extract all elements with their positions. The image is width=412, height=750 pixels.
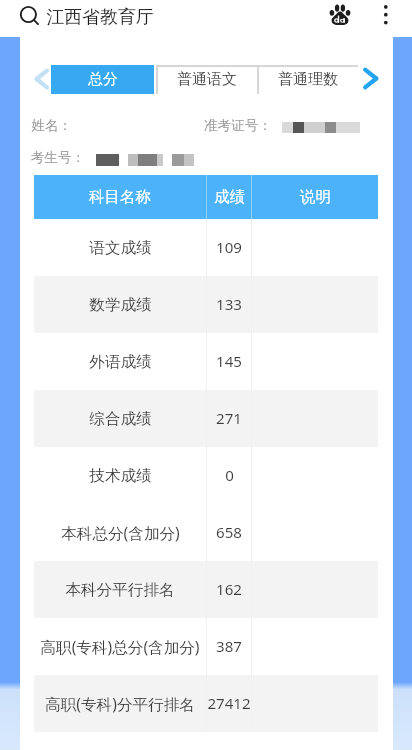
staticText: 数学成绩 — [89, 295, 152, 315]
button[interactable]: Next — [364, 68, 378, 89]
staticText: 本科分平行排名 — [65, 580, 175, 600]
button[interactable]: 语文成绩 — [34, 219, 378, 276]
staticText: 准考证号： — [204, 117, 272, 134]
staticText: 江西省教育厅 — [46, 6, 154, 29]
staticText: 科目名称 — [89, 187, 151, 207]
button[interactable]: 普通理数 — [257, 65, 358, 94]
staticText: 145 — [216, 351, 242, 372]
button[interactable]: Baidu — [329, 3, 355, 29]
staticText: 综合成绩 — [89, 409, 152, 429]
staticText: 成绩 — [214, 187, 245, 207]
staticText: 普通语文 — [177, 70, 237, 89]
staticText: 技术成绩 — [89, 466, 152, 486]
staticText: 语文成绩 — [89, 238, 152, 258]
staticText: 27412 — [207, 693, 251, 714]
staticText: 本科总分(含加分) — [61, 522, 180, 543]
staticText: 高职(专科)总分(含加分) — [40, 636, 200, 657]
button[interactable]: 数学成绩 — [34, 276, 378, 333]
staticText: 271 — [216, 408, 242, 429]
staticText: 133 — [216, 294, 242, 315]
button[interactable]: 本科总分(含加分) — [34, 504, 378, 561]
button[interactable]: 外语成绩 — [34, 333, 378, 390]
button[interactable]: Search — [14, 1, 43, 30]
staticText: 162 — [216, 579, 242, 600]
staticText: 0 — [225, 465, 234, 486]
button[interactable]: 技术成绩 — [34, 447, 378, 504]
button[interactable]: 普通语文 — [156, 65, 257, 94]
staticText: 387 — [216, 636, 242, 657]
button[interactable]: Previous — [35, 69, 48, 89]
button[interactable]: 高职(专科)总分(含加分) — [34, 618, 378, 675]
button[interactable]: 总分 — [51, 65, 154, 94]
button[interactable]: 综合成绩 — [34, 390, 378, 447]
staticText: 说明 — [300, 187, 331, 207]
button[interactable]: 高职(专科)分平行排名 — [34, 675, 378, 732]
staticText: 总分 — [88, 70, 118, 89]
button[interactable]: 本科分平行排名 — [34, 561, 378, 618]
staticText: 普通理数 — [278, 70, 338, 89]
staticText: 姓名： — [31, 117, 72, 134]
staticText: 考生号： — [31, 149, 85, 166]
button[interactable]: More options — [374, 1, 398, 25]
staticText: 109 — [216, 237, 242, 258]
staticText: 658 — [216, 522, 242, 543]
staticText: 外语成绩 — [89, 352, 152, 372]
staticText: 高职(专科)分平行排名 — [45, 693, 195, 714]
